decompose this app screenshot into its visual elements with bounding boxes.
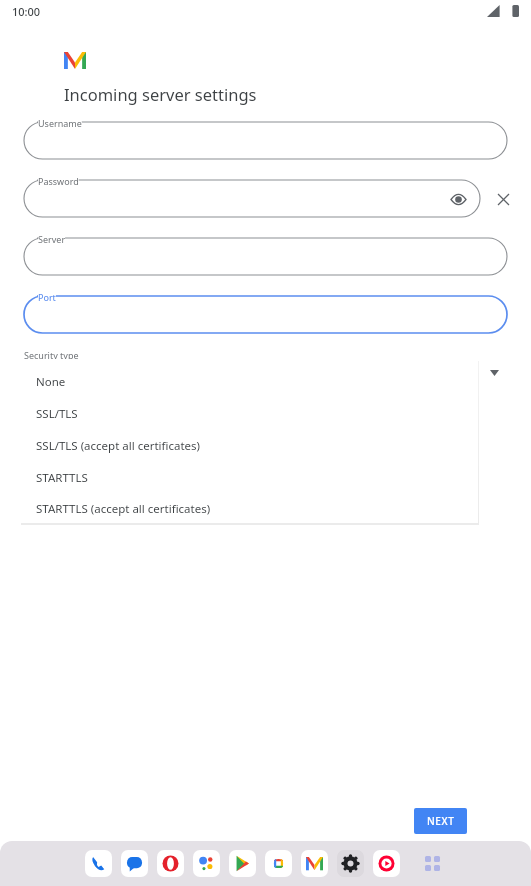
button[interactable]: Opera xyxy=(157,850,184,877)
button[interactable]: Username xyxy=(24,122,507,159)
button[interactable]: SSL/TLS xyxy=(20,398,478,430)
button[interactable]: Settings xyxy=(337,850,364,877)
button[interactable]: NEXT xyxy=(414,808,467,834)
staticText: Password xyxy=(38,175,79,187)
button[interactable]: Assistant xyxy=(193,850,220,877)
staticText: NEXT xyxy=(427,814,455,828)
button[interactable]: Password xyxy=(24,180,480,217)
button[interactable]: STARTTLS (accept all certificates) xyxy=(20,494,478,523)
button[interactable]: STARTTLS xyxy=(20,462,478,494)
staticText: Username xyxy=(38,117,82,129)
staticText: 10:00 xyxy=(12,4,41,19)
button[interactable]: Clear xyxy=(489,185,517,213)
button[interactable]: SSL/TLS (accept all certificates) xyxy=(20,430,478,462)
button[interactable]: Security type dropdown xyxy=(481,360,507,386)
staticText: SSL/TLS xyxy=(36,406,78,422)
staticText: Server xyxy=(38,233,66,245)
staticText: STARTTLS xyxy=(36,470,88,486)
button[interactable]: YouTube Music xyxy=(373,850,400,877)
staticText: SSL/TLS (accept all certificates) xyxy=(36,438,201,454)
button[interactable]: Gmail xyxy=(301,850,328,877)
staticText: Port xyxy=(38,291,56,303)
button[interactable]: Messages xyxy=(121,850,148,877)
staticText: None xyxy=(36,374,66,390)
button[interactable]: Show password xyxy=(446,187,470,211)
button[interactable]: Server xyxy=(24,238,507,275)
staticText: Incoming server settings xyxy=(64,83,257,105)
button[interactable]: Port xyxy=(24,296,507,333)
button[interactable]: None xyxy=(20,366,478,398)
staticText: STARTTLS (accept all certificates) xyxy=(36,501,211,517)
button[interactable]: Photos xyxy=(265,850,292,877)
staticText: Security type xyxy=(24,349,79,361)
button[interactable]: Play Store xyxy=(229,850,256,877)
button[interactable]: All apps xyxy=(419,850,446,877)
button[interactable]: Phone xyxy=(85,850,112,877)
